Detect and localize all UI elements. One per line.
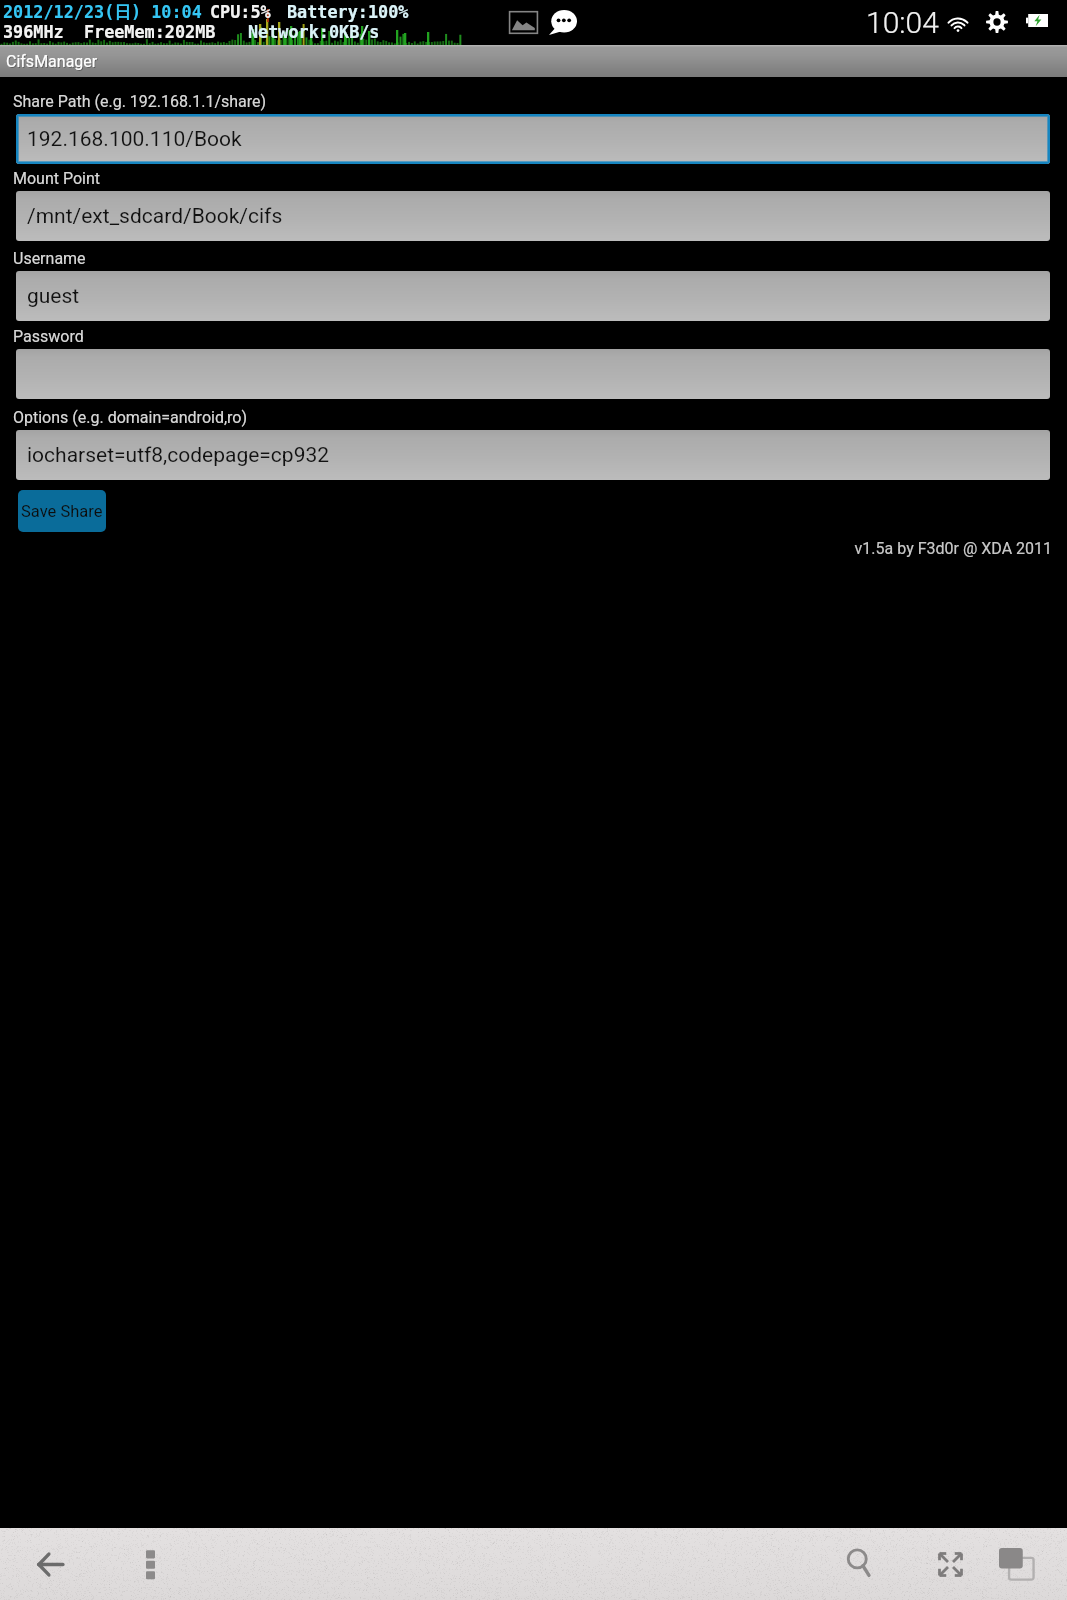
staticText: Network:0KB/s <box>248 22 380 42</box>
staticText: Options (e.g. domain=android,ro) <box>13 408 248 427</box>
staticText: Password <box>13 327 84 346</box>
staticText: 10:04 <box>866 5 939 40</box>
button[interactable]: Save Share <box>18 490 106 532</box>
button[interactable]: /mnt/ext_sdcard/Book/cifs <box>16 191 1050 241</box>
staticText: Share Path (e.g. 192.168.1.1/share) <box>13 92 267 111</box>
staticText: 2012/12/23(日) 10:04 <box>3 2 212 23</box>
staticText: /mnt/ext_sdcard/Book/cifs <box>27 204 283 229</box>
button[interactable]: Back <box>14 1528 86 1600</box>
button[interactable]: guest <box>16 271 1050 321</box>
staticText: guest <box>27 284 80 309</box>
button[interactable]: iocharset=utf8,codepage=cp932 <box>16 430 1050 480</box>
button[interactable]: Fullscreen <box>914 1528 986 1600</box>
staticText: 192.168.100.110/Book <box>27 127 242 152</box>
staticText: Username <box>13 249 86 268</box>
button[interactable] <box>16 349 1050 399</box>
button[interactable]: Search <box>824 1528 896 1600</box>
staticText: CifsManager <box>6 52 98 71</box>
button[interactable]: Menu <box>114 1528 186 1600</box>
staticText: Mount Point <box>13 169 101 188</box>
staticText: CifsManager <box>7 53 99 72</box>
button[interactable]: 192.168.100.110/Book <box>16 114 1050 164</box>
staticText: iocharset=utf8,codepage=cp932 <box>27 443 330 468</box>
staticText: 396MHz FreeMem:202MB <box>3 22 216 42</box>
button[interactable]: Recent apps <box>981 1528 1053 1600</box>
staticText: CPU:5% <box>210 2 271 22</box>
staticText: Battery:100% <box>287 2 409 22</box>
staticText: Save Share <box>21 502 103 521</box>
staticText: v1.5a by F3d0r @ XDA 2011 <box>0 539 1052 558</box>
